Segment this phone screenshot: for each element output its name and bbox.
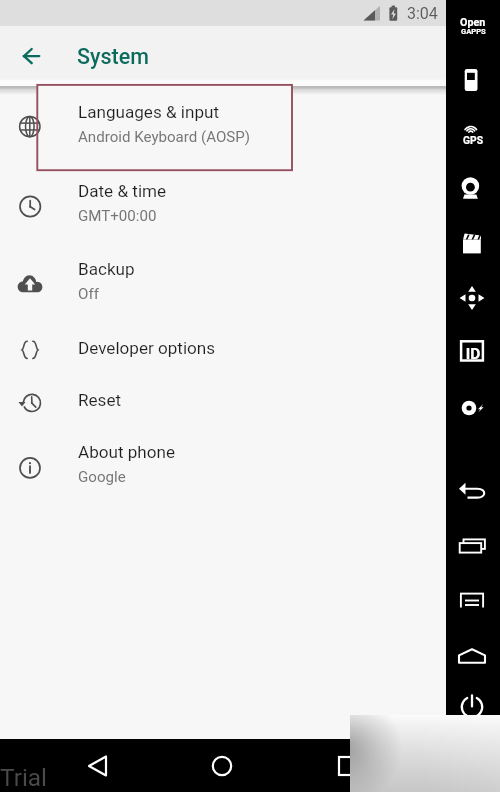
button[interactable]: Languages & input <box>0 86 446 165</box>
staticText: Off <box>78 285 99 303</box>
staticText: Trial <box>0 763 48 792</box>
button[interactable]: Screenshot <box>446 382 500 434</box>
staticText: Open <box>460 16 486 29</box>
button[interactable]: Reset <box>0 374 446 426</box>
button[interactable]: About phone <box>0 426 446 504</box>
button[interactable]: Camera <box>446 163 500 215</box>
staticText: Date & time <box>78 181 167 201</box>
button[interactable]: Battery <box>446 54 500 106</box>
staticText: Backup <box>78 259 135 279</box>
staticText: Reset <box>78 390 122 410</box>
button[interactable]: Navigate up <box>8 33 54 79</box>
staticText: GMT+00:00 <box>78 207 157 225</box>
button[interactable]: Home <box>446 630 500 682</box>
button[interactable]: Backup <box>0 243 446 322</box>
button[interactable]: Power <box>446 681 500 733</box>
staticText: Google <box>78 468 126 486</box>
staticText: ID <box>446 345 500 363</box>
staticText: Android Keyboard (AOSP) <box>78 128 251 146</box>
button[interactable]: Home <box>196 740 248 792</box>
staticText: GPS <box>446 134 500 146</box>
button[interactable]: Recent apps <box>322 740 374 792</box>
button[interactable]: Record video <box>446 217 500 269</box>
button[interactable]: Keyboard <box>446 574 500 626</box>
staticText: System <box>77 44 149 69</box>
button[interactable]: Back <box>72 740 124 792</box>
staticText: Developer options <box>78 338 216 358</box>
staticText: GAPPS <box>461 27 486 36</box>
button[interactable]: Date & time <box>0 165 446 244</box>
button[interactable]: Developer options <box>0 322 446 375</box>
button[interactable]: Identifiers <box>446 325 500 377</box>
button[interactable]: Move <box>446 272 500 324</box>
staticText: 3:04 <box>407 4 438 23</box>
staticText: Languages & input <box>78 102 220 122</box>
button[interactable]: GPS <box>446 108 500 160</box>
button[interactable]: Open <box>446 2 500 46</box>
button[interactable]: Recent apps <box>446 520 500 572</box>
button[interactable]: Back <box>446 466 500 518</box>
staticText: About phone <box>78 442 176 462</box>
